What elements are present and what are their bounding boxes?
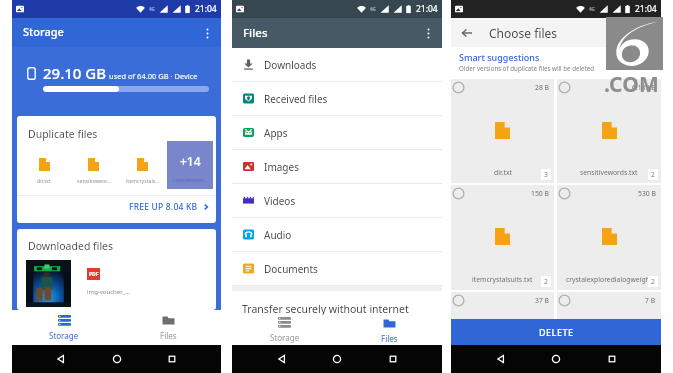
- staticText: itemcrystals...: [126, 177, 160, 184]
- staticText: Duplicate files: [28, 127, 98, 141]
- staticText: Smart suggestions: [459, 51, 540, 63]
- staticText: img-voucher_...: [87, 288, 131, 296]
- staticText: Videos: [264, 194, 296, 208]
- staticText: crystalexplor...: [173, 176, 208, 183]
- staticText: 4G: [149, 6, 155, 12]
- button[interactable]: Videos: [232, 184, 442, 217]
- staticText: 2: [651, 277, 655, 286]
- other: Back: [276, 353, 288, 365]
- other: Home: [111, 353, 123, 365]
- button[interactable]: 6.18 KB: [557, 79, 661, 183]
- staticText: Downloaded files: [28, 239, 114, 253]
- staticText: Apps: [264, 126, 288, 140]
- staticText: Files: [160, 330, 177, 341]
- other: Home: [331, 353, 343, 365]
- staticText: Transfer securely without internet: [242, 302, 409, 316]
- button[interactable]: Back: [457, 23, 477, 43]
- staticText: Files: [243, 25, 418, 41]
- staticText: 3: [544, 170, 548, 179]
- button[interactable]: 150 B: [451, 185, 554, 290]
- other: Back: [55, 353, 67, 365]
- button[interactable]: More options: [418, 23, 438, 43]
- button[interactable]: Documents: [232, 252, 442, 285]
- staticText: DELETE: [539, 326, 574, 338]
- staticText: +14: [180, 153, 201, 169]
- button[interactable]: Downloaded files: [17, 229, 216, 310]
- staticText: Storage: [270, 332, 300, 343]
- staticText: 21:04: [195, 3, 217, 15]
- staticText: Documents: [264, 262, 318, 276]
- staticText: 6.18 KB: [632, 83, 656, 92]
- staticText: sensitivewords.txt: [580, 168, 638, 177]
- staticText: Storage: [23, 24, 197, 39]
- staticText: 37 B: [535, 296, 549, 305]
- staticText: Send files to people nearby, fast and fr…: [242, 318, 386, 328]
- other: Recents: [606, 353, 618, 365]
- button[interactable]: Files: [116, 310, 221, 345]
- staticText: Audio: [264, 228, 292, 242]
- staticText: 21:04: [635, 3, 657, 15]
- button[interactable]: Storage: [12, 310, 116, 345]
- staticText: 4G: [589, 6, 595, 12]
- staticText: dir.txt: [37, 177, 51, 184]
- button[interactable]: Images: [232, 150, 442, 183]
- button[interactable]: Duplicate files: [17, 116, 216, 223]
- staticText: 29.10 GB: [43, 63, 107, 83]
- button[interactable]: Downloads: [232, 48, 442, 81]
- staticText: 4G: [370, 6, 376, 12]
- staticText: itemcrystalsuits.txt: [472, 275, 533, 284]
- staticText: Downloads: [264, 58, 317, 72]
- staticText: used of 64.00 GB · Device: [109, 71, 198, 81]
- staticText: Older versions of duplicate files will b…: [459, 64, 595, 72]
- button[interactable]: Apps: [232, 116, 442, 149]
- other: Recents: [387, 353, 399, 365]
- staticText: 2: [544, 277, 548, 286]
- staticText: Choose files: [489, 25, 557, 41]
- staticText: sensitivewor...: [77, 177, 111, 184]
- other: Home: [550, 353, 562, 365]
- staticText: Storage: [49, 330, 79, 341]
- button[interactable]: 530 B: [557, 185, 661, 290]
- button[interactable]: 28 B: [451, 79, 554, 183]
- button[interactable]: More options: [197, 23, 217, 43]
- staticText: 28 B: [535, 83, 549, 92]
- button[interactable]: DELETE: [451, 319, 661, 345]
- button[interactable]: Storage: [232, 315, 337, 345]
- button[interactable]: Files: [337, 315, 442, 345]
- staticText: dir.txt: [494, 168, 512, 177]
- staticText: 7 B: [645, 296, 656, 305]
- staticText: 150 B: [531, 189, 549, 198]
- button[interactable]: Received files: [232, 82, 442, 115]
- staticText: 2: [651, 170, 655, 179]
- staticText: Images: [264, 160, 299, 174]
- staticText: Files: [381, 333, 398, 344]
- staticText: PDF: [89, 271, 99, 278]
- staticText: Received files: [264, 92, 328, 106]
- staticText: 21:04: [416, 3, 438, 15]
- staticText: crystalexploredialogweight: [566, 275, 653, 284]
- button[interactable]: Audio: [232, 218, 442, 251]
- other: Back: [495, 353, 507, 365]
- staticText: .COM: [604, 70, 660, 99]
- staticText: 530 B: [638, 189, 656, 198]
- other: Recents: [166, 353, 178, 365]
- staticText: FREE UP 8.04 KB: [129, 201, 198, 213]
